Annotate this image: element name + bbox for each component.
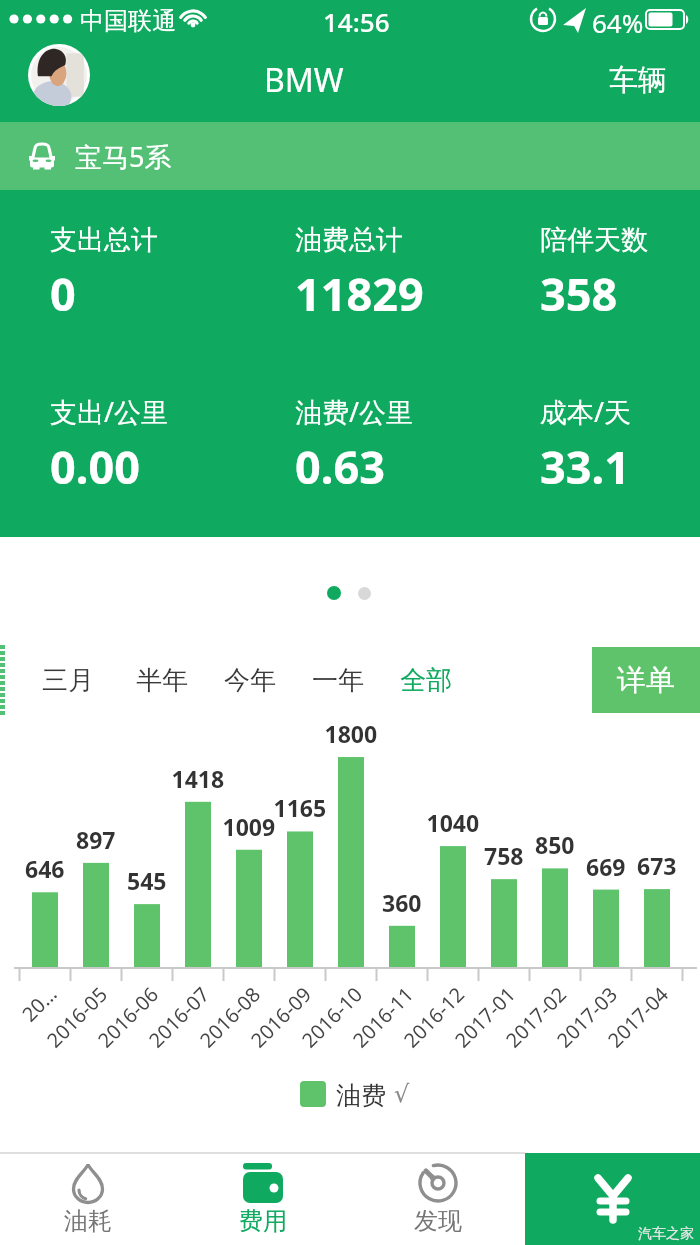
staticText: 一年 [312,664,364,697]
staticText: 0.63 [295,436,385,497]
button[interactable]: 油耗 [0,1162,175,1245]
staticText: 发现 [414,1206,462,1236]
staticText: 半年 [136,664,188,697]
staticText: 14:56 [323,4,390,39]
staticText: 0.00 [50,436,140,497]
staticText: 陪伴天数 [540,223,648,257]
staticText: 358 [540,263,618,324]
button[interactable]: 今年 [220,658,280,702]
staticText: 成本/天 [540,393,632,430]
staticText: 油耗 [64,1206,112,1236]
staticText: 油费 [336,1080,386,1108]
button[interactable]: 全部 [396,658,456,702]
button[interactable]: 详单 [592,647,700,713]
staticText: 油费总计 [295,223,403,257]
staticText: 中国联通 [80,6,176,36]
button[interactable]: 三月 [38,658,98,702]
staticText: 汽车之家 [638,1225,694,1243]
button[interactable]: 一年 [308,658,368,702]
staticText: 宝马5系 [75,138,172,175]
button[interactable]: 半年 [132,658,192,702]
staticText: 三月 [42,664,94,697]
staticText: √ [394,1080,410,1108]
button[interactable]: 车辆 [588,50,688,110]
staticText: 支出总计 [50,223,158,257]
button[interactable]: 发现 [350,1162,525,1245]
button[interactable]: 汽车之家 [525,1153,700,1245]
staticText: 64% [592,5,644,40]
staticText: 全部 [400,664,452,697]
button[interactable]: 费用 [175,1162,350,1245]
staticText: 0 [50,263,76,324]
staticText: 支出/公里 [50,393,169,430]
staticText: 11829 [295,263,424,324]
staticText: 详单 [617,662,675,699]
button[interactable]: 油费 [300,1080,410,1108]
staticText: 油费/公里 [295,393,414,430]
staticText: 33.1 [540,436,630,497]
staticText: 车辆 [609,62,667,99]
staticText: 今年 [224,664,276,697]
staticText: BMW [264,58,344,102]
button[interactable] [28,44,90,106]
staticText: 费用 [239,1206,287,1236]
button[interactable]: 宝马5系 [0,122,700,190]
